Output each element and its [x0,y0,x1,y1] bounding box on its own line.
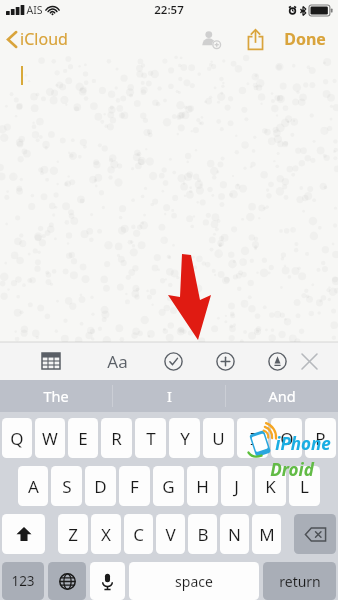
staticText: K [265,475,276,498]
staticText: E [78,427,88,450]
button[interactable]: G [153,466,184,506]
staticText: U [212,427,225,450]
staticText: iPhone [275,432,331,455]
button[interactable]: D [85,466,116,506]
staticText: W [42,427,58,450]
button[interactable]: U [203,418,234,458]
staticText: I [167,386,172,406]
button[interactable]: W [35,418,65,458]
staticText: J [234,475,239,498]
staticText: T [146,427,156,450]
button[interactable]: X [91,514,121,554]
button[interactable]: Share [240,24,270,54]
staticText: B [197,523,209,546]
staticText: 22:57 [154,2,184,18]
button[interactable]: And [226,380,338,412]
button[interactable]: L [289,466,320,506]
staticText: Aa [107,350,128,373]
button[interactable]: 123 [2,562,44,600]
button[interactable]: T [135,418,166,458]
button[interactable]: Q [2,418,32,458]
button[interactable]: The [0,380,112,412]
staticText: N [228,523,241,546]
staticText: A [28,475,39,498]
button[interactable]: S [51,466,82,506]
button[interactable]: A [18,466,48,506]
button[interactable]: R [101,418,132,458]
staticText: The [43,386,69,406]
staticText: O [280,427,294,450]
staticText: C [133,523,144,546]
button[interactable]: V [156,514,185,554]
button[interactable]: P [305,418,336,458]
button[interactable]: Add attachment [208,344,242,378]
button[interactable]: E [68,418,98,458]
button[interactable]: Dictation [90,562,125,600]
staticText: M [259,523,275,546]
staticText: Q [10,427,24,450]
button[interactable]: Markup [260,344,294,378]
button[interactable]: Switch keyboard [48,562,86,600]
staticText: AIS [26,3,43,17]
button[interactable]: Table [34,344,68,378]
button[interactable]: space [129,562,259,600]
button[interactable]: H [187,466,218,506]
staticText: space [175,572,213,591]
staticText: F [130,475,139,498]
staticText: S [62,475,72,498]
button[interactable]: iCloud [0,24,78,54]
staticText: Done [284,28,326,50]
staticText: V [165,523,176,546]
staticText: D [94,475,107,498]
button[interactable]: B [188,514,217,554]
staticText: iCloud [20,28,68,50]
staticText: P [315,427,326,450]
staticText: Z [68,523,78,546]
button[interactable]: F [119,466,150,506]
button[interactable]: Close keyboard [294,344,324,378]
button[interactable]: Text format [100,344,134,378]
staticText: 123 [11,572,35,590]
staticText: I [250,427,256,450]
staticText: X [101,523,111,546]
staticText: R [111,427,122,450]
button[interactable]: M [252,514,281,554]
staticText: Y [180,427,190,450]
button[interactable]: return [263,562,336,600]
button[interactable]: Y [169,418,200,458]
staticText: H [196,475,209,498]
button[interactable]: Backspace [294,514,336,554]
button[interactable]: Checklist [156,344,190,378]
staticText: And [268,386,296,406]
button[interactable]: O [271,418,302,458]
button[interactable]: I [237,418,268,458]
button[interactable]: K [255,466,286,506]
staticText: Droid [270,458,314,481]
button[interactable]: Done [280,22,330,56]
staticText: L [300,475,309,498]
staticText: G [162,475,175,498]
button[interactable]: Shift [2,514,45,554]
staticText: return [279,572,321,591]
button[interactable]: N [220,514,249,554]
button[interactable]: Add people [196,24,226,54]
button[interactable]: Z [58,514,88,554]
button[interactable]: J [221,466,252,506]
button[interactable]: C [124,514,153,554]
button[interactable]: I [113,380,225,412]
